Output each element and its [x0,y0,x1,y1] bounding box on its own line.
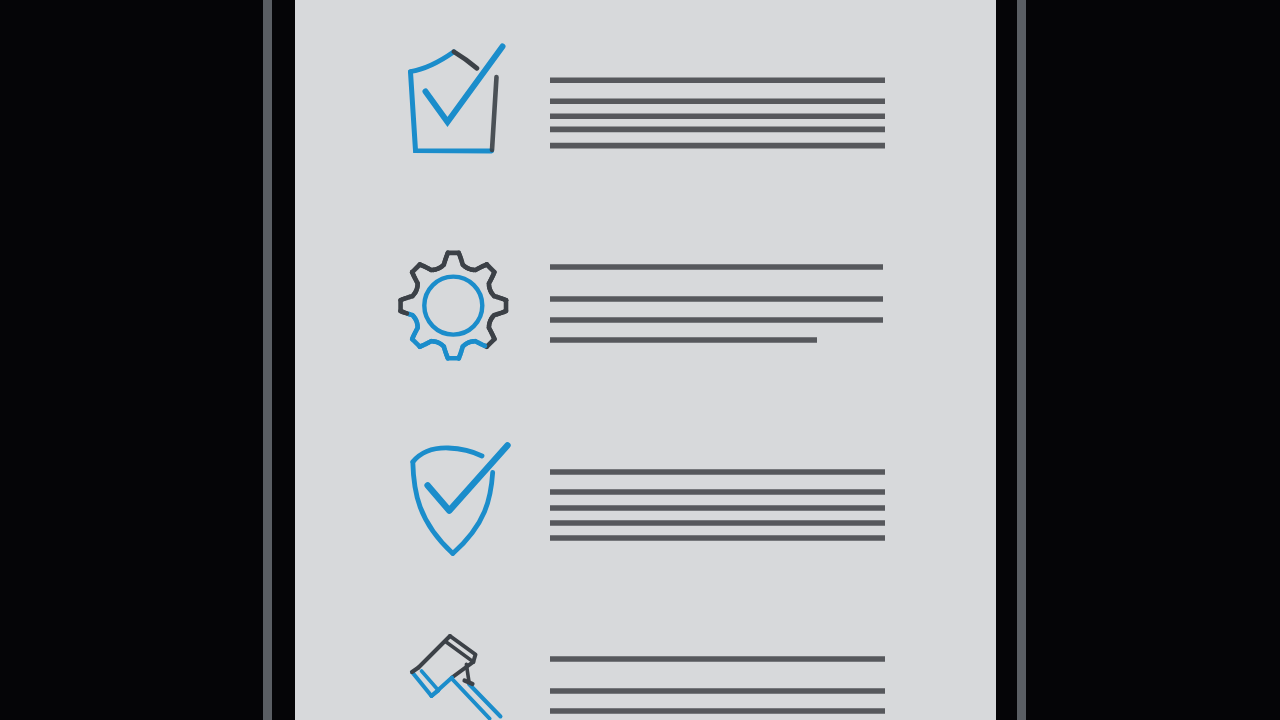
button[interactable]: Legal [295,588,996,720]
button[interactable]: Verified submission [295,0,996,196]
button[interactable]: Settings [295,196,996,392]
button[interactable]: Protection verified [295,392,996,588]
